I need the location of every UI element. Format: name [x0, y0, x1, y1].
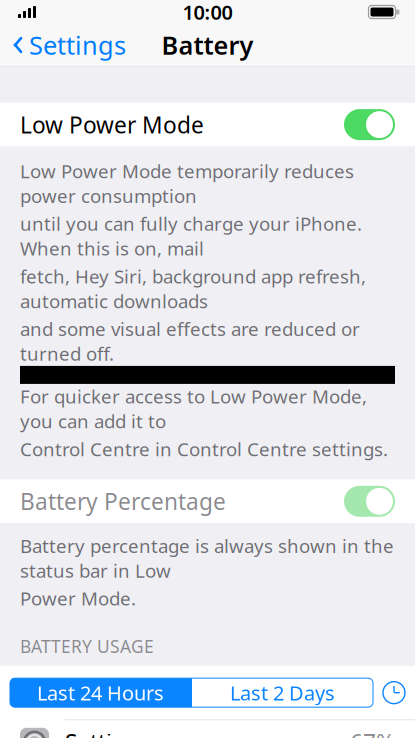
staticText: Low Power Mode: [20, 109, 204, 140]
staticText: Control Centre in Control Centre setting…: [20, 436, 388, 461]
staticText: For quicker access to Low Power Mode, yo…: [20, 384, 367, 433]
staticText: 10:00: [182, 0, 232, 25]
staticText: fetch, Hey Siri, background app refresh,…: [20, 264, 366, 313]
button[interactable]: Last 24 Hours: [10, 678, 191, 707]
staticText: Battery: [161, 28, 253, 62]
staticText: Settings: [29, 28, 126, 62]
staticText: Settings: [65, 727, 151, 738]
button[interactable]: Battery Percentage: [0, 479, 415, 523]
staticText: Low Power Mode temporarily reduces power…: [20, 159, 354, 208]
staticText: Battery percentage is always shown in th…: [20, 533, 394, 583]
button[interactable]: Settings: [0, 22, 126, 68]
staticText: BATTERY USAGE: [20, 635, 154, 658]
staticText: Last 24 Hours: [37, 679, 164, 706]
button[interactable]: Show battery usage by time: [373, 675, 415, 711]
staticText: Power Mode.: [20, 586, 136, 611]
button[interactable]: Settings: [0, 720, 415, 738]
button[interactable]: Low Power Mode: [0, 103, 415, 147]
staticText: 67%: [350, 727, 395, 738]
staticText: Battery Percentage: [20, 486, 226, 516]
staticText: Last 2 Days: [230, 679, 335, 706]
staticText: and some visual effects are reduced or t…: [20, 316, 360, 366]
button[interactable]: Last 2 Days: [192, 678, 373, 707]
staticText: until you can fully charge your iPhone. …: [20, 211, 362, 261]
